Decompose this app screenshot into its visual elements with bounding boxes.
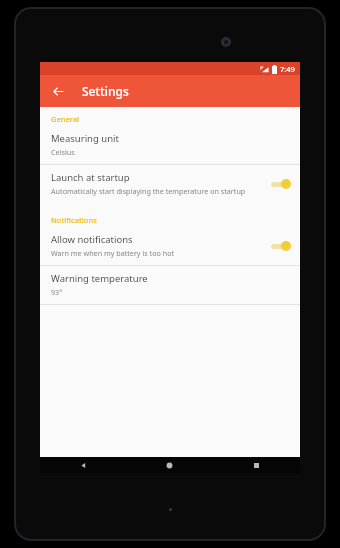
- staticText: 93°: [51, 287, 63, 297]
- staticText: Launch at startup: [51, 171, 130, 184]
- button[interactable]: Measuring unit: [40, 126, 300, 164]
- staticText: Measuring unit: [51, 132, 119, 145]
- staticText: Notifications: [51, 215, 97, 225]
- button[interactable]: Recent apps: [213, 457, 300, 473]
- staticText: Allow notifications: [51, 233, 133, 246]
- staticText: Settings: [82, 83, 129, 99]
- staticText: Automatically start displaying the tempe…: [51, 186, 246, 196]
- button[interactable]: Home: [126, 457, 213, 473]
- button[interactable]: Back: [40, 457, 126, 473]
- button[interactable]: Allow notifications: [40, 227, 300, 265]
- button[interactable]: Back: [47, 80, 69, 102]
- button[interactable]: Toggle setting: [269, 240, 291, 252]
- button[interactable]: Launch at startup: [40, 165, 300, 203]
- staticText: Warning temperature: [51, 272, 148, 285]
- button[interactable]: Toggle setting: [269, 178, 291, 190]
- staticText: Celsius: [51, 147, 75, 157]
- staticText: General: [51, 114, 80, 124]
- button[interactable]: Warning temperature: [40, 266, 300, 304]
- staticText: Warn me when my battery is too hot: [51, 248, 175, 258]
- staticText: 7:49: [280, 64, 295, 74]
